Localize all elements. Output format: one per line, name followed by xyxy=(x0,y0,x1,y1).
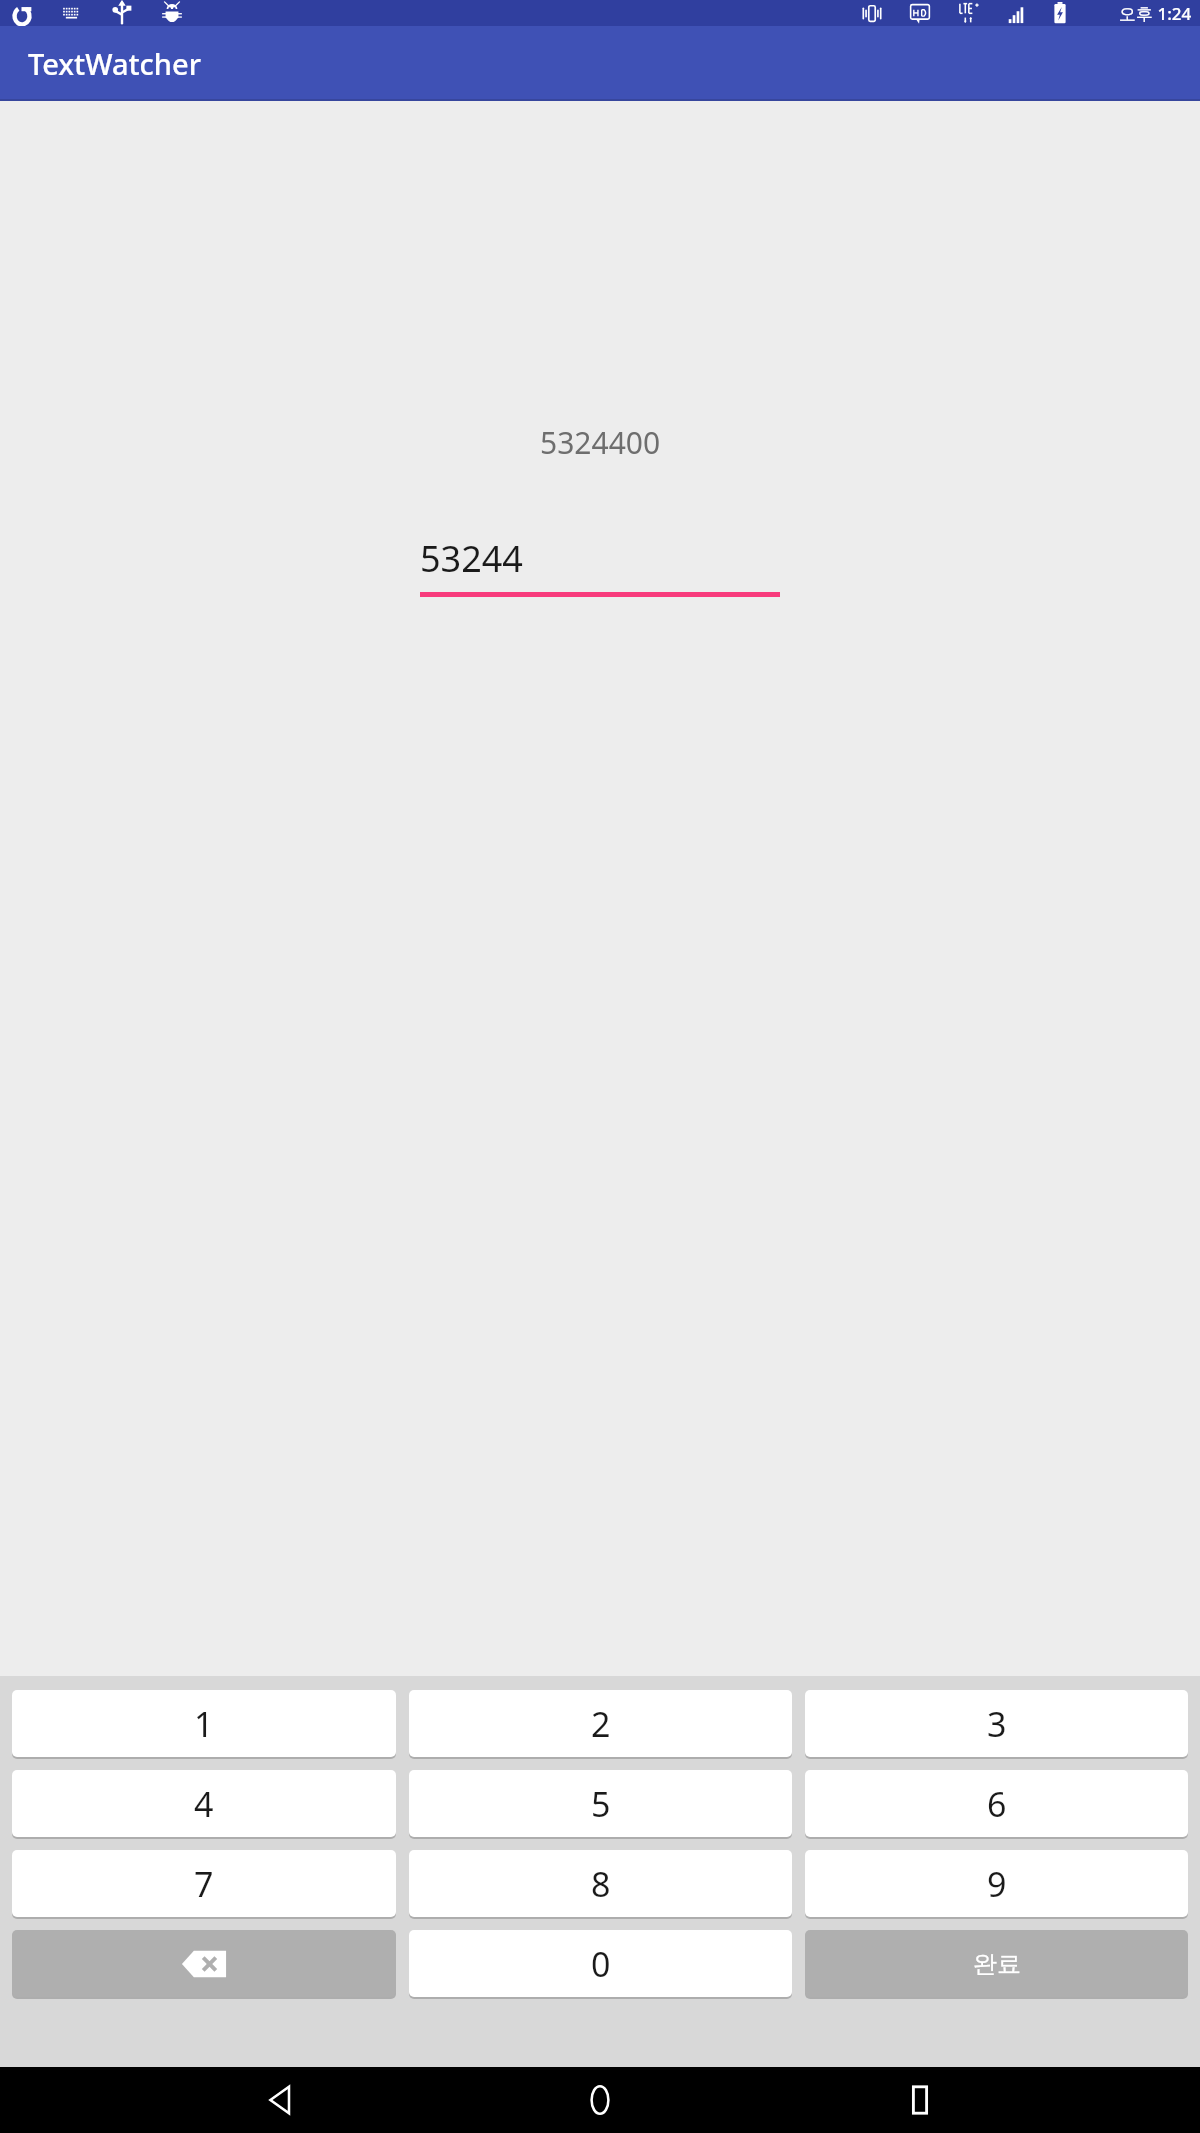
button[interactable]: 53244 xyxy=(420,534,780,597)
staticText: 0 xyxy=(591,1941,611,1987)
staticText: 5 xyxy=(591,1781,611,1827)
button[interactable]: 1 xyxy=(12,1690,396,1757)
other: Backspace xyxy=(12,1930,396,1997)
button[interactable]: 0 xyxy=(409,1930,792,1997)
staticText: TextWatcher xyxy=(28,44,201,83)
button[interactable]: 3 xyxy=(805,1690,1188,1757)
button[interactable]: 6 xyxy=(805,1770,1188,1837)
button[interactable]: 5 xyxy=(409,1770,792,1837)
staticText: 7 xyxy=(194,1861,214,1907)
button[interactable]: Back xyxy=(240,2067,320,2133)
staticText: 1 xyxy=(194,1701,214,1747)
staticText: 9 xyxy=(987,1861,1007,1907)
button[interactable]: 4 xyxy=(12,1770,396,1837)
staticText: 8 xyxy=(591,1861,611,1907)
staticText: 4 xyxy=(194,1781,214,1827)
button[interactable]: 완료 xyxy=(805,1930,1188,1997)
button[interactable]: Recent apps xyxy=(880,2067,960,2133)
button[interactable]: 7 xyxy=(12,1850,396,1917)
staticText: 5324400 xyxy=(540,422,661,463)
staticText: 오후 1:24 xyxy=(1119,2,1192,25)
button[interactable]: 9 xyxy=(805,1850,1188,1917)
staticText: 6 xyxy=(987,1781,1007,1827)
button[interactable]: 2 xyxy=(409,1690,792,1757)
button[interactable]: 8 xyxy=(409,1850,792,1917)
staticText: 완료 xyxy=(973,1949,1021,1979)
staticText: 3 xyxy=(987,1701,1007,1747)
button[interactable] xyxy=(12,1930,396,1997)
staticText: 53244 xyxy=(420,534,523,580)
button[interactable]: Home xyxy=(560,2067,640,2133)
staticText: 2 xyxy=(591,1701,611,1747)
